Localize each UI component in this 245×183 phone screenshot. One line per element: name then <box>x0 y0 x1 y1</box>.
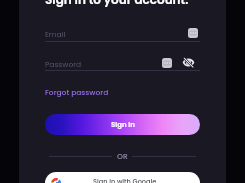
staticText: Sign in <box>111 120 135 130</box>
staticText: Sign in to your account. <box>45 0 189 8</box>
button[interactable]: Autofill <box>162 58 172 68</box>
button[interactable]: Sign in with Google <box>45 172 200 183</box>
button[interactable]: Password <box>45 55 200 71</box>
button[interactable]: Autofill <box>188 28 198 38</box>
staticText: Password <box>45 59 82 69</box>
button[interactable]: Email <box>45 25 200 41</box>
button[interactable]: Show password <box>183 57 194 68</box>
button[interactable]: Sign in <box>45 114 200 135</box>
button[interactable]: Forgot password <box>45 87 109 97</box>
staticText: Sign in with Google <box>93 177 157 183</box>
staticText: Email <box>45 29 66 39</box>
staticText: OR <box>117 151 128 161</box>
staticText: Forgot password <box>45 87 109 97</box>
